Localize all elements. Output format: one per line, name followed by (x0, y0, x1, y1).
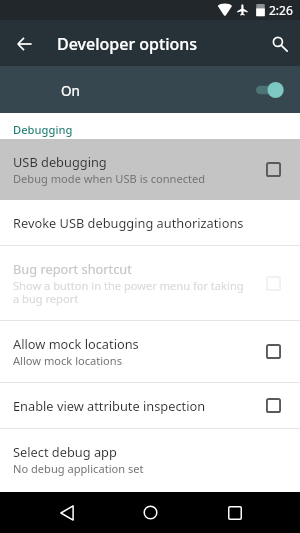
button[interactable]: USB debugging (0, 139, 300, 200)
button[interactable]: Recent apps (212, 492, 257, 533)
button[interactable]: Search (262, 26, 298, 62)
staticText: No debug application set (13, 461, 144, 476)
staticText: On (61, 82, 80, 100)
staticText: Developer options (57, 33, 198, 55)
staticText: Allow mock locations (13, 353, 122, 368)
staticText: 2:26 (269, 2, 293, 18)
staticText: Bug report shortcut (13, 260, 132, 277)
staticText: USB debugging (13, 153, 107, 170)
staticText: Select debug app (13, 443, 117, 460)
button[interactable]: Select debug app (0, 429, 300, 490)
button[interactable]: Navigate up (6, 26, 42, 62)
staticText: Enable view attribute inspection (13, 397, 258, 414)
staticText: Debugging (13, 122, 73, 137)
staticText: Show a button in the power menu for taki… (13, 278, 248, 306)
button[interactable]: Back (44, 492, 89, 533)
button[interactable]: Allow mock locations (0, 321, 300, 382)
staticText: Debug mode when USB is connected (13, 171, 206, 186)
button[interactable]: Home (128, 492, 173, 533)
staticText: Allow mock locations (13, 335, 139, 352)
button[interactable]: On (0, 66, 300, 113)
button[interactable]: Revoke USB debugging authorizations (0, 200, 300, 245)
button[interactable]: Enable view attribute inspection (0, 383, 300, 428)
staticText: Revoke USB debugging authorizations (13, 214, 281, 231)
